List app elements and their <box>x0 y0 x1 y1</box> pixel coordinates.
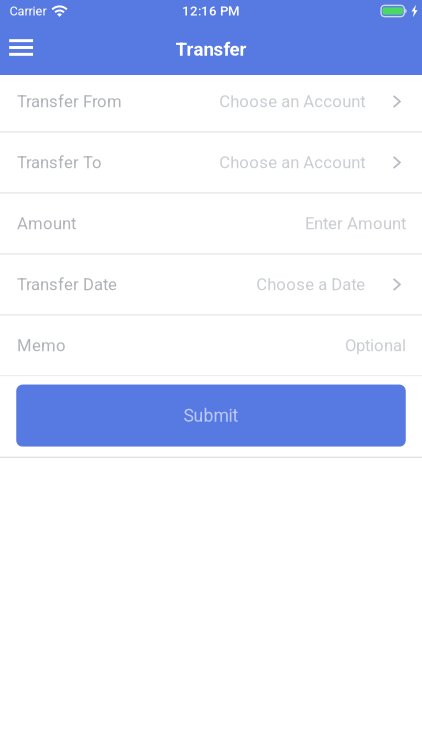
button[interactable]: Transfer To <box>0 133 422 194</box>
staticText: Choose an Account <box>219 153 365 172</box>
button[interactable]: Amount <box>0 194 422 255</box>
staticText: 12:16 PM <box>182 3 240 19</box>
button[interactable]: Memo <box>0 316 422 377</box>
staticText: Memo <box>17 336 66 355</box>
staticText: Choose a Date <box>256 275 365 294</box>
button[interactable]: Transfer From <box>0 72 422 133</box>
staticText: Transfer Date <box>17 275 117 294</box>
staticText: Transfer <box>175 38 246 60</box>
button[interactable]: Transfer Date <box>0 255 422 316</box>
button[interactable]: Menu <box>0 25 42 69</box>
staticText: Optional <box>345 336 406 355</box>
button[interactable]: Submit <box>16 385 406 447</box>
staticText: Amount <box>17 214 76 233</box>
staticText: Submit <box>183 405 238 426</box>
staticText: Enter Amount <box>305 214 406 233</box>
staticText: Transfer To <box>17 153 102 172</box>
staticText: Transfer From <box>17 92 122 111</box>
staticText: Choose an Account <box>219 92 365 111</box>
staticText: Carrier <box>9 3 46 18</box>
